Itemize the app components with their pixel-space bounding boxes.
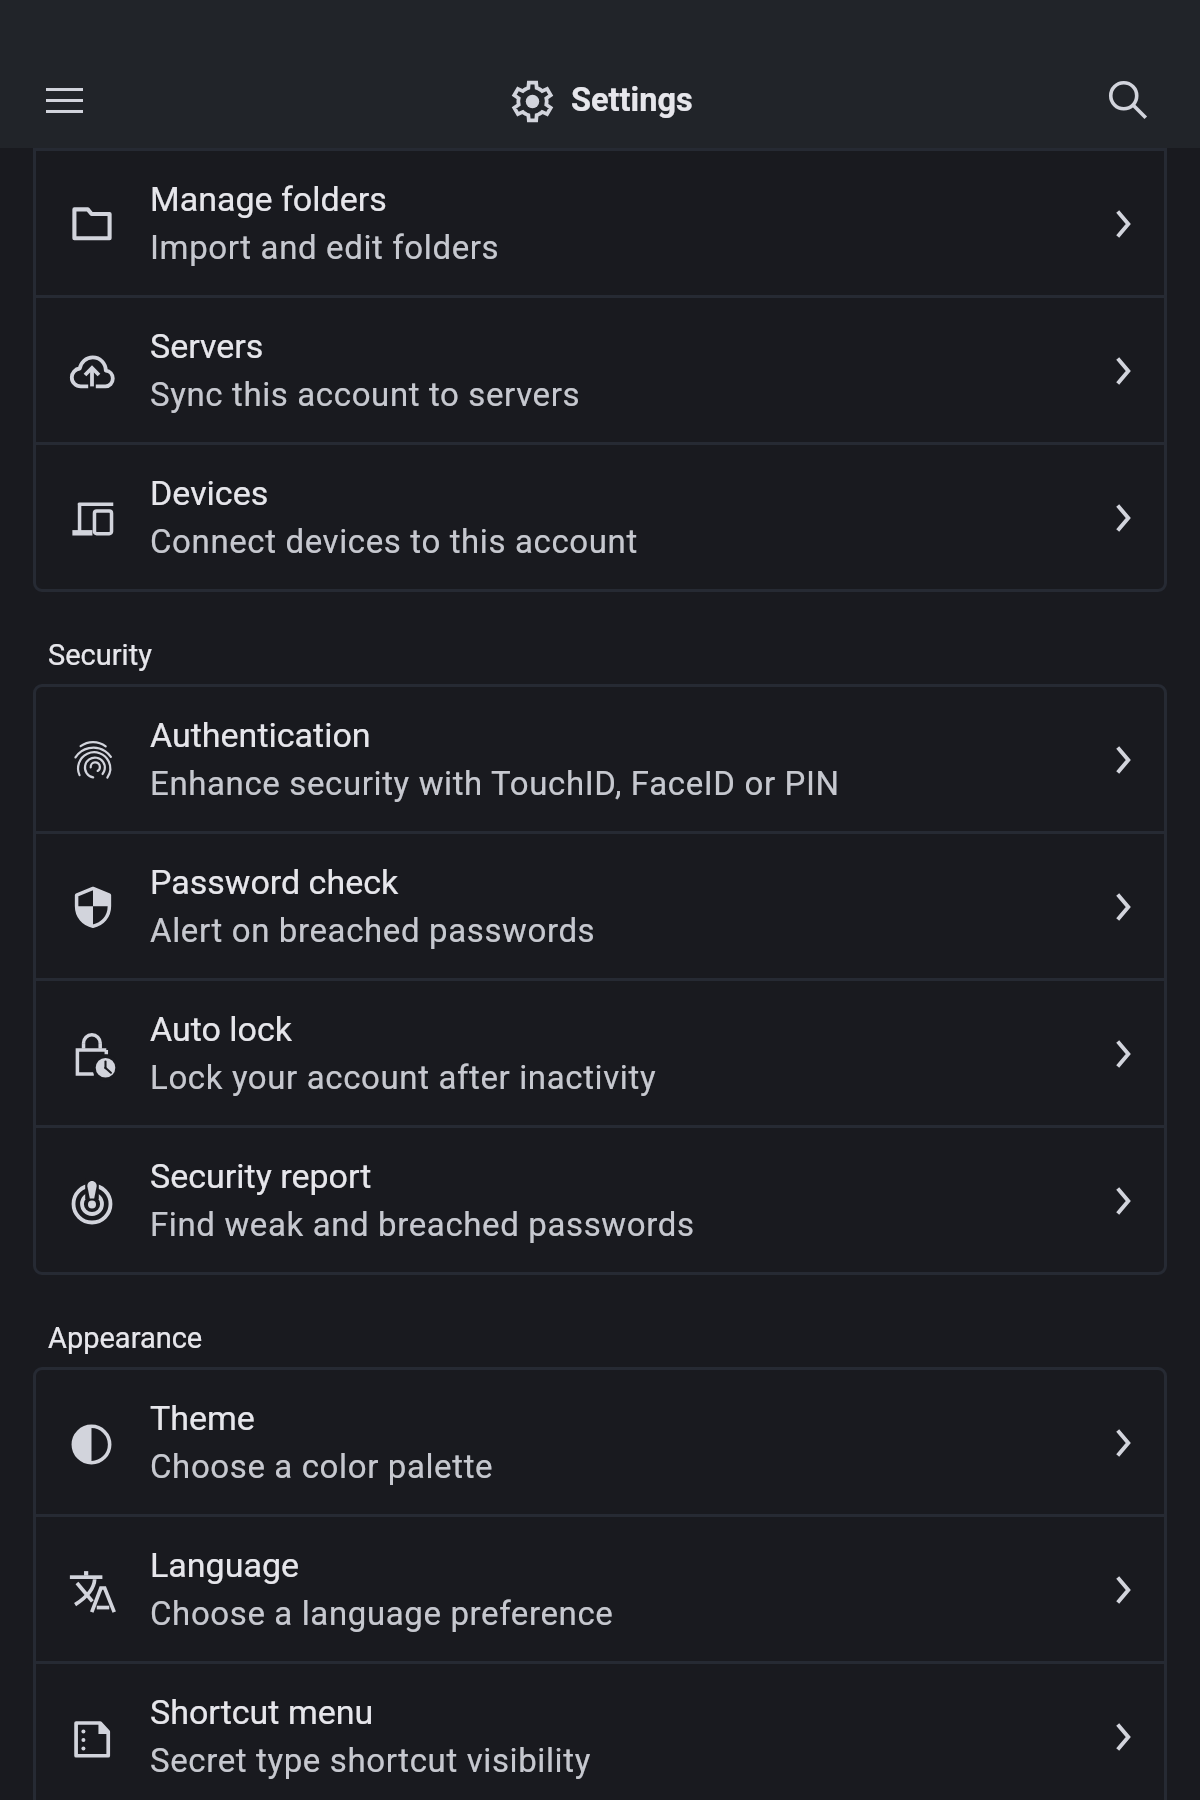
staticText: Appearance bbox=[48, 1321, 203, 1355]
button[interactable]: Theme bbox=[33, 1370, 1167, 1514]
staticText: Password check bbox=[150, 862, 399, 902]
staticText: Theme bbox=[150, 1398, 255, 1438]
staticText: Security bbox=[48, 638, 152, 672]
button[interactable]: Authentication bbox=[33, 687, 1167, 831]
staticText: Servers bbox=[150, 326, 264, 366]
staticText: Sync this account to servers bbox=[150, 375, 581, 414]
button[interactable]: Auto lock bbox=[33, 981, 1167, 1125]
staticText: Connect devices to this account bbox=[150, 522, 638, 561]
staticText: Choose a color palette bbox=[150, 1447, 494, 1486]
button[interactable]: Search bbox=[1090, 65, 1158, 133]
staticText: Shortcut menu bbox=[150, 1692, 374, 1732]
staticText: Find weak and breached passwords bbox=[150, 1205, 695, 1244]
button[interactable]: Open navigation menu bbox=[24, 66, 104, 134]
staticText: Authentication bbox=[150, 715, 371, 755]
button[interactable]: Devices bbox=[33, 445, 1167, 589]
staticText: Language bbox=[150, 1545, 300, 1585]
staticText: Settings bbox=[571, 81, 693, 119]
staticText: Security report bbox=[150, 1156, 372, 1196]
button[interactable]: Security report bbox=[33, 1128, 1167, 1272]
button[interactable]: Language bbox=[33, 1517, 1167, 1661]
button[interactable]: Shortcut menu bbox=[33, 1664, 1167, 1800]
button[interactable]: Servers bbox=[33, 298, 1167, 442]
staticText: Enhance security with TouchID, FaceID or… bbox=[150, 764, 840, 803]
staticText: Secret type shortcut visibility bbox=[150, 1741, 591, 1780]
button[interactable]: Manage folders bbox=[33, 151, 1167, 295]
staticText: Devices bbox=[150, 473, 269, 513]
staticText: Lock your account after inactivity bbox=[150, 1058, 657, 1097]
button[interactable]: Password check bbox=[33, 834, 1167, 978]
staticText: Manage folders bbox=[150, 179, 387, 219]
staticText: Import and edit folders bbox=[150, 228, 500, 267]
staticText: Alert on breached passwords bbox=[150, 911, 596, 950]
staticText: Choose a language preference bbox=[150, 1594, 614, 1633]
staticText: Auto lock bbox=[150, 1009, 293, 1049]
